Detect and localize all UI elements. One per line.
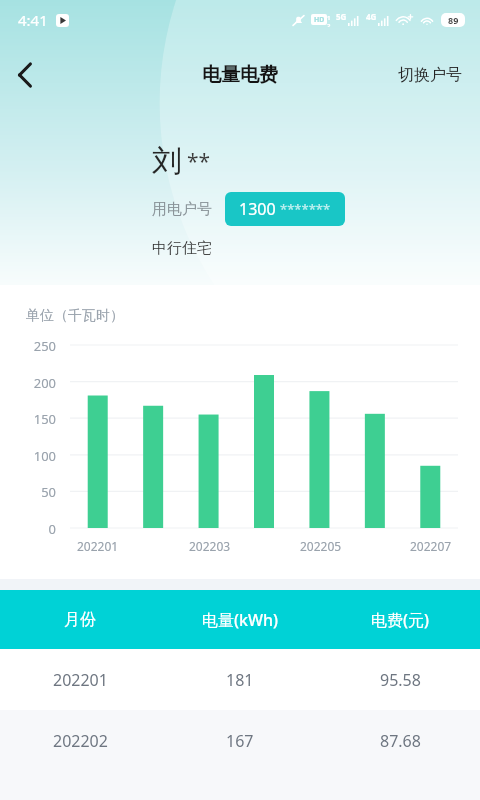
staticText: 100 [0, 447, 56, 465]
staticText: ******* [280, 200, 331, 218]
staticText: HD [314, 15, 325, 25]
staticText: 202207 [410, 538, 452, 554]
staticText: 电量电费 [202, 63, 278, 87]
staticText: ** [187, 147, 211, 176]
staticText: 4G [366, 11, 377, 22]
staticText: 89 [448, 14, 459, 26]
button[interactable]: 202201 [0, 649, 480, 710]
staticText: 4:41 [18, 10, 48, 30]
staticText: 87.68 [380, 730, 421, 752]
staticText: 202203 [189, 538, 231, 554]
staticText: 中行住宅 [152, 239, 212, 258]
staticText: 202201 [77, 538, 119, 554]
staticText: 用电户号 [152, 200, 212, 219]
staticText: 电量(kWh) [202, 609, 279, 631]
staticText: 95.58 [380, 669, 421, 691]
staticText: 5G [336, 11, 347, 22]
staticText: 202205 [300, 538, 342, 554]
staticText: 1 [327, 14, 331, 22]
staticText: 200 [0, 374, 56, 392]
staticText: 1300 [239, 198, 276, 220]
staticText: 181 [226, 669, 254, 691]
button[interactable]: 202202 [0, 710, 480, 771]
staticText: 150 [0, 410, 56, 428]
staticText: 单位（千瓦时） [26, 307, 124, 325]
staticText: 2 [327, 22, 331, 27]
button[interactable]: 切换户号 [380, 53, 480, 97]
staticText: 50 [0, 483, 56, 501]
staticText: 电费(元) [371, 609, 429, 631]
staticText: 刘 [152, 142, 182, 180]
staticText: 202201 [53, 669, 108, 691]
button[interactable]: 1300 [225, 192, 345, 226]
staticText: 月份 [64, 610, 96, 630]
staticText: 切换户号 [398, 65, 462, 85]
staticText: 202202 [53, 730, 108, 752]
staticText: 167 [226, 730, 254, 752]
staticText: 250 [0, 337, 56, 355]
staticText: 0 [0, 520, 56, 538]
button[interactable]: Back [0, 51, 48, 99]
